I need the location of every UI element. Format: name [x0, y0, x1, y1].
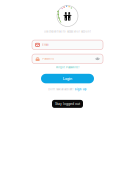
button[interactable]: Show password — [95, 57, 100, 60]
button[interactable]: Stay logged out — [52, 100, 83, 108]
staticText: Password — [42, 57, 54, 60]
staticText: Sign Up — [75, 88, 87, 91]
button[interactable]: Login — [41, 74, 94, 83]
staticText: Stay logged out — [55, 102, 80, 106]
staticText: Email — [42, 43, 49, 46]
button[interactable]: Sign Up — [75, 88, 87, 91]
staticText: Don't have an account? — [48, 88, 73, 91]
staticText: Login — [63, 76, 72, 81]
staticText: Use credentials to access your account — [44, 30, 91, 33]
button[interactable]: Forgot Password? — [56, 66, 79, 69]
staticText: Forgot Password? — [56, 66, 79, 69]
